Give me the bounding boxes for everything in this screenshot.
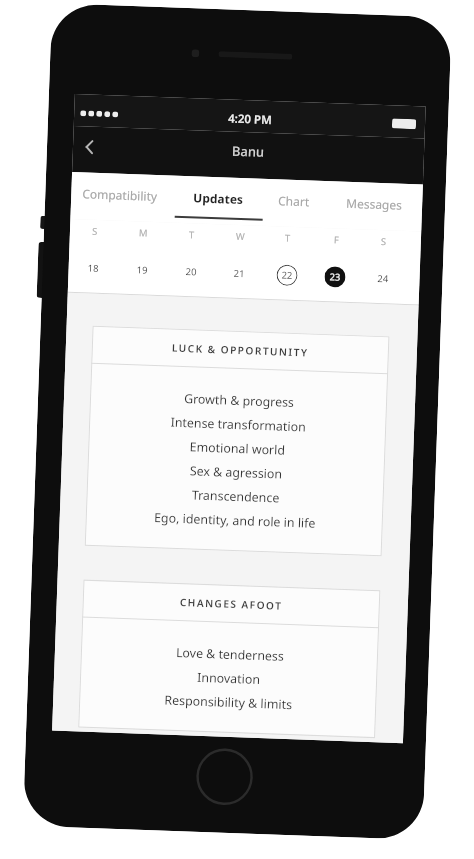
staticText: 22 xyxy=(281,268,293,282)
staticText: 18 xyxy=(87,262,99,275)
staticText: 24 xyxy=(377,272,389,285)
staticText: S xyxy=(381,235,387,248)
staticText: Compatibility xyxy=(82,185,158,204)
staticText: 20 xyxy=(185,265,197,278)
staticText: Growth & progress xyxy=(184,390,294,411)
staticText: T xyxy=(189,228,195,241)
button[interactable]: Back xyxy=(74,132,103,161)
staticText: 4:20 PM xyxy=(228,110,272,128)
staticText: M xyxy=(139,226,148,240)
staticText: S xyxy=(92,225,98,238)
staticText: 23 xyxy=(329,270,341,284)
staticText: Emotional world xyxy=(189,438,285,459)
staticText: F xyxy=(334,233,339,246)
staticText: W xyxy=(236,230,245,243)
staticText: T xyxy=(285,232,291,245)
button[interactable]: Chart xyxy=(277,179,311,227)
staticText: Banu xyxy=(232,142,265,161)
staticText: Intense transformation xyxy=(170,414,306,435)
staticText: Sex & agression xyxy=(189,462,283,483)
staticText: Love & tenderness xyxy=(176,644,284,665)
staticText: 21 xyxy=(233,267,245,280)
button[interactable]: 23 xyxy=(324,266,346,288)
staticText: Updates xyxy=(193,189,243,207)
staticText: Transcendence xyxy=(191,486,280,506)
staticText: Responsibility & limits xyxy=(164,692,292,713)
button[interactable]: Home xyxy=(196,748,254,806)
staticText: Chart xyxy=(278,192,310,209)
staticText: Innovation xyxy=(197,669,260,688)
staticText: LUCK & OPPORTUNITY xyxy=(172,341,309,359)
staticText: Messages xyxy=(346,195,402,213)
staticText: 19 xyxy=(136,263,148,277)
button[interactable]: Updates xyxy=(192,176,244,225)
button[interactable]: Messages xyxy=(345,182,403,231)
button[interactable]: Compatibility xyxy=(81,172,158,222)
button[interactable]: 22 xyxy=(276,264,298,286)
staticText: CHANGES AFOOT xyxy=(179,595,283,613)
staticText: Ego, identity, and role in life xyxy=(153,509,316,532)
